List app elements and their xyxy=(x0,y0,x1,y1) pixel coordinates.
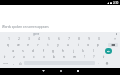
button[interactable]: n xyxy=(59,55,69,59)
button[interactable]: i xyxy=(73,43,83,47)
staticText: ☺ xyxy=(19,62,22,65)
staticText: 8 xyxy=(78,37,80,41)
button[interactable]: h xyxy=(58,49,68,53)
staticText: ⇧ xyxy=(3,55,6,59)
staticText: ⇧ xyxy=(102,55,105,59)
button[interactable]: e xyxy=(23,43,33,47)
button[interactable]: 8 xyxy=(74,37,84,41)
button[interactable]: v xyxy=(39,55,49,59)
button[interactable]: Shift xyxy=(99,55,108,59)
staticText: d xyxy=(32,49,34,53)
button[interactable]: . xyxy=(95,61,102,65)
button[interactable]: x xyxy=(19,55,29,59)
staticText: e xyxy=(27,43,29,47)
staticText: q xyxy=(7,43,9,47)
button[interactable]: g xyxy=(48,49,58,53)
staticText: t xyxy=(47,43,49,47)
staticText: l xyxy=(93,49,94,53)
staticText: ?123 xyxy=(3,62,8,65)
staticText: z xyxy=(13,55,15,59)
button[interactable]: 0 xyxy=(94,37,104,41)
staticText: 7 xyxy=(68,37,70,41)
staticText: , xyxy=(13,61,14,65)
button[interactable]: s xyxy=(18,49,28,53)
staticText: 5 xyxy=(48,37,50,41)
button[interactable]: Voice input xyxy=(102,60,112,66)
button[interactable]: 5 xyxy=(44,37,54,41)
staticText: 1 xyxy=(8,37,10,41)
staticText: o xyxy=(87,43,89,47)
staticText: × xyxy=(114,37,116,41)
button[interactable]: Emoji xyxy=(17,61,24,65)
button[interactable]: c xyxy=(29,55,39,59)
button[interactable]: Delete xyxy=(110,37,120,41)
button[interactable]: p xyxy=(93,43,103,47)
staticText: u xyxy=(67,43,69,47)
button[interactable]: ? xyxy=(89,55,99,59)
staticText: a xyxy=(12,49,14,53)
staticText: 4 xyxy=(38,37,40,41)
button[interactable]: o xyxy=(83,43,93,47)
staticText: v xyxy=(43,55,45,59)
button[interactable]: r xyxy=(33,43,43,47)
button[interactable]: Enter xyxy=(105,48,112,54)
button[interactable]: u xyxy=(63,43,73,47)
staticText: p xyxy=(97,43,99,47)
staticText: ? xyxy=(93,55,95,59)
button[interactable]: d xyxy=(28,49,38,53)
button[interactable]: ! xyxy=(79,55,89,59)
staticText: . xyxy=(98,61,99,65)
staticText: s xyxy=(22,49,24,53)
button[interactable]: Shift xyxy=(0,55,9,59)
staticText: m xyxy=(73,55,76,59)
staticText: w xyxy=(17,43,20,47)
button[interactable]: 1 xyxy=(4,37,14,41)
button[interactable]: z xyxy=(9,55,19,59)
staticText: c xyxy=(33,55,35,59)
staticText: k xyxy=(82,49,84,53)
staticText: h xyxy=(62,49,64,53)
button[interactable]: 6 xyxy=(54,37,64,41)
button[interactable]: a xyxy=(8,49,18,53)
staticText: Words spoken on screen appears xyxy=(2,25,49,29)
button[interactable]: , xyxy=(10,61,17,65)
button[interactable]: f xyxy=(38,49,48,53)
button[interactable]: Home xyxy=(52,68,69,75)
staticText: gone xyxy=(33,32,40,36)
button[interactable]: j xyxy=(68,49,78,53)
staticText: b xyxy=(53,55,55,59)
staticText: g xyxy=(52,49,54,53)
button[interactable]: l xyxy=(88,49,98,53)
button[interactable]: Hide keyboard xyxy=(35,68,52,75)
button[interactable]: b xyxy=(49,55,59,59)
button[interactable]: ?123 xyxy=(1,61,10,65)
staticText: 2:30 xyxy=(113,1,119,5)
button[interactable]: t xyxy=(43,43,53,47)
staticText: j xyxy=(73,49,74,53)
staticText: r xyxy=(37,43,39,47)
staticText: f xyxy=(43,49,44,53)
button[interactable]: k xyxy=(78,49,88,53)
staticText: 2 xyxy=(18,37,20,41)
button[interactable]: Backspace xyxy=(108,43,118,47)
button[interactable]: y xyxy=(53,43,63,47)
button[interactable]: 9 xyxy=(84,37,94,41)
staticText: 3 xyxy=(28,37,30,41)
staticText: 0 xyxy=(98,37,100,41)
staticText: x xyxy=(23,55,25,59)
staticText: i xyxy=(78,43,79,47)
staticText: n xyxy=(63,55,65,59)
button[interactable]: 7 xyxy=(64,37,74,41)
button[interactable]: q xyxy=(3,43,13,47)
button[interactable]: 4 xyxy=(34,37,44,41)
staticText: 6 xyxy=(58,37,60,41)
staticText: 9 xyxy=(88,37,90,41)
staticText: ! xyxy=(84,55,85,59)
button[interactable]: 3 xyxy=(24,37,34,41)
staticText: y xyxy=(57,43,59,47)
button[interactable]: 2 xyxy=(14,37,24,41)
button[interactable]: m xyxy=(69,55,79,59)
button[interactable]: w xyxy=(13,43,23,47)
button[interactable]: Recent apps xyxy=(69,68,86,75)
